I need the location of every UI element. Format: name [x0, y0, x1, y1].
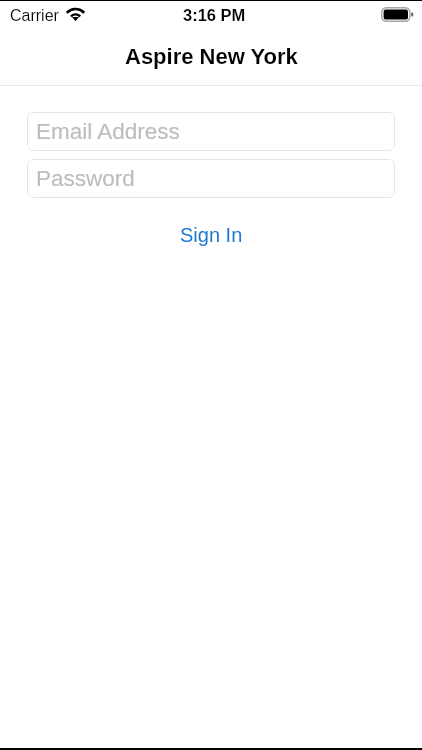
staticText: Password — [36, 166, 135, 191]
other: Wi-Fi signal — [66, 7, 85, 21]
staticText: 3:16 PM — [183, 6, 246, 24]
staticText: Aspire New York — [125, 44, 298, 69]
staticText: Sign In — [180, 224, 243, 246]
staticText: Email Address — [36, 119, 180, 144]
other: Battery full — [381, 7, 414, 22]
staticText: Carrier — [10, 7, 59, 25]
button[interactable]: Password — [27, 159, 395, 198]
button[interactable]: Sign In — [168, 222, 255, 248]
button[interactable]: Email Address — [27, 112, 395, 151]
